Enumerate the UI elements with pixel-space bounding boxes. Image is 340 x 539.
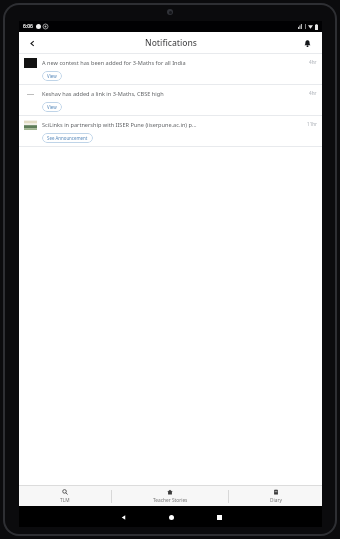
staticText: 11hr <box>307 121 317 127</box>
staticText: A new contest has been added for 3-Maths… <box>42 59 305 67</box>
staticText: Teacher Stories <box>153 497 188 504</box>
staticText: View <box>47 104 57 110</box>
staticText: View <box>47 73 57 79</box>
button[interactable]: View <box>42 102 62 112</box>
staticText: TLM <box>60 497 70 504</box>
staticText: 6:06 <box>23 23 33 30</box>
button[interactable]: See Announcement <box>42 133 93 143</box>
staticText: | <box>304 23 307 30</box>
button[interactable]: View <box>42 71 62 81</box>
button[interactable]: Diary <box>229 486 322 506</box>
button[interactable]: A new contest has been added for 3-Maths… <box>19 54 322 84</box>
staticText: See Announcement <box>47 135 88 141</box>
staticText: SciLinks in partnership with IISER Pune … <box>42 121 303 129</box>
button[interactable]: Back <box>24 35 40 51</box>
staticText: 4hr <box>309 90 317 96</box>
button[interactable]: Keshav has added a link in 3-Maths, CBSE… <box>19 85 322 115</box>
button[interactable]: TLM <box>19 486 111 506</box>
button[interactable]: Teacher Stories <box>112 486 228 506</box>
button[interactable]: Home <box>163 509 179 525</box>
button[interactable]: Recent apps <box>211 509 227 525</box>
staticText: Notifications <box>145 37 197 49</box>
staticText: Keshav has added a link in 3-Maths, CBSE… <box>42 90 305 98</box>
button[interactable]: Back <box>115 509 131 525</box>
button[interactable]: Notifications <box>299 35 315 51</box>
staticText: 4hr <box>309 59 317 65</box>
button[interactable]: SciLinks in partnership with IISER Pune … <box>19 116 322 146</box>
staticText: Diary <box>270 497 282 504</box>
